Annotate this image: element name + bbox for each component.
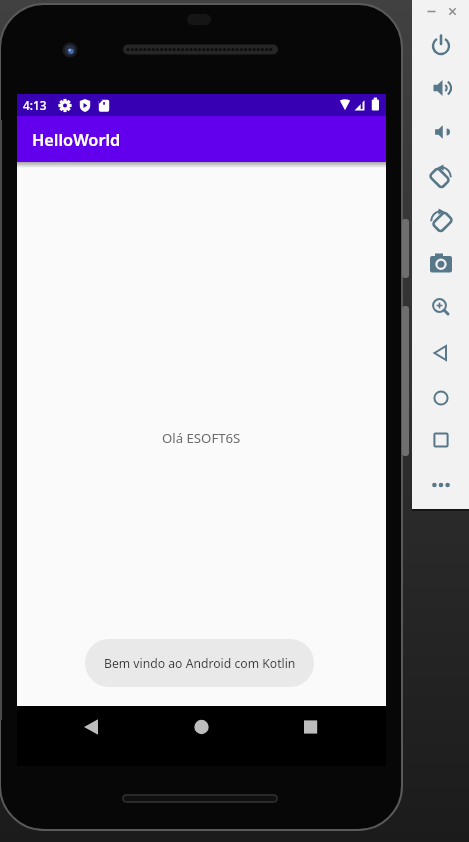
button[interactable] — [292, 710, 330, 744]
staticText: Olá ESOFT6S — [162, 429, 241, 447]
button[interactable] — [423, 290, 459, 326]
button[interactable] — [423, 246, 459, 282]
staticText: HelloWorld — [32, 129, 121, 151]
staticText: 4:13 — [23, 97, 47, 113]
button[interactable] — [423, 203, 459, 239]
button[interactable] — [423, 114, 459, 150]
button[interactable] — [183, 710, 221, 744]
button[interactable] — [445, 4, 461, 20]
button[interactable] — [423, 4, 439, 20]
button[interactable] — [423, 422, 459, 458]
button[interactable] — [423, 467, 459, 503]
button[interactable] — [423, 380, 459, 416]
button[interactable] — [423, 335, 459, 371]
button[interactable] — [423, 159, 459, 195]
button[interactable] — [423, 27, 459, 63]
button[interactable] — [72, 710, 110, 744]
button[interactable] — [423, 70, 459, 106]
staticText: Bem vindo ao Android com Kotlin — [104, 655, 296, 672]
